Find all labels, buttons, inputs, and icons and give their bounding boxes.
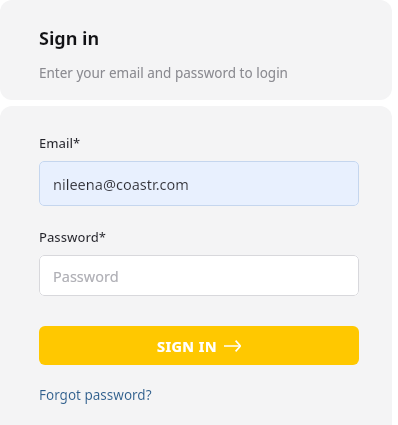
staticText: Password* [39,228,106,246]
button[interactable]: SIGN IN [39,326,359,365]
staticText: Enter your email and password to login [39,64,288,82]
staticText: SIGN IN [157,336,217,356]
staticText: Password [53,266,119,286]
other: Sign in [224,340,241,352]
button[interactable]: nileena@coastr.com [39,161,359,206]
staticText: Forgot password? [39,386,152,404]
button[interactable]: Forgot password? [39,386,152,404]
staticText: Email* [39,134,81,152]
staticText: Sign in [39,26,100,51]
button[interactable]: Password [39,255,359,296]
staticText: nileena@coastr.com [53,174,189,194]
